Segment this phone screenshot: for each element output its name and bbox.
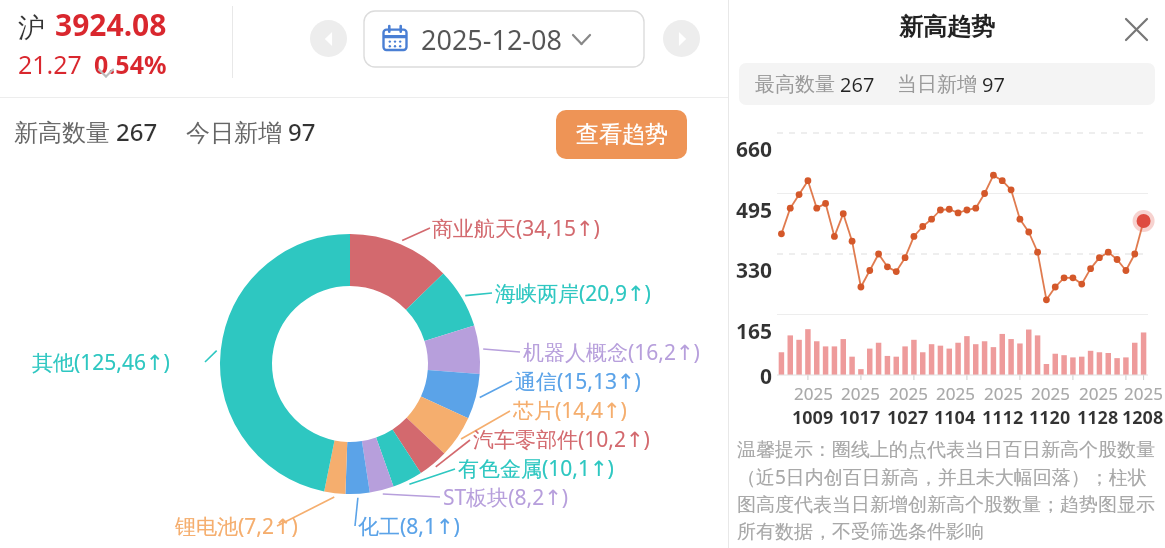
staticText: 芯片(14,4↑) (513, 396, 627, 425)
staticText: 温馨提示：圈线上的点代表当日百日新高个股数量（近5日内创百日新高，并且未大幅回落… (737, 438, 1159, 544)
staticText: 1128 (1077, 405, 1119, 430)
staticText: 0.54% (94, 47, 167, 81)
staticText: 2025-12-08 (421, 21, 562, 58)
staticText: 495 (736, 196, 773, 225)
staticText: 汽车零部件(10,2↑) (473, 425, 650, 454)
staticText: 267 (840, 71, 875, 98)
staticText: 锂电池(7,2↑) (175, 512, 298, 541)
staticText: 商业航天(34,15↑) (432, 214, 600, 243)
staticText: 97 (982, 71, 1005, 98)
staticText: 1208 (1122, 405, 1164, 430)
staticText: 有色金属(10,1↑) (458, 454, 614, 483)
staticText: 1009 (792, 405, 834, 430)
staticText: 1104 (934, 405, 976, 430)
staticText: 21.27 (18, 47, 82, 81)
staticText: 165 (736, 317, 773, 346)
staticText: 0 (760, 362, 773, 391)
staticText: 2025 (984, 382, 1023, 405)
button[interactable]: Previous day (310, 20, 347, 57)
staticText: 2025 (889, 382, 928, 405)
staticText: 3924.08 (55, 4, 167, 45)
staticText: 97 (288, 115, 316, 148)
staticText: 330 (736, 256, 773, 285)
staticText: 通信(15,13↑) (515, 367, 641, 396)
staticText: 最高数量 (755, 72, 835, 97)
staticText: 其他(125,46↑) (32, 348, 170, 377)
staticText: ST板块(8,2↑) (443, 483, 569, 512)
staticText: 1017 (839, 405, 881, 430)
staticText: 2025 (794, 382, 833, 405)
staticText: 机器人概念(16,2↑) (523, 338, 700, 367)
staticText: 1027 (887, 405, 929, 430)
staticText: 新高数量 (14, 118, 110, 148)
button[interactable]: 查看趋势 (556, 110, 687, 159)
staticText: 2025 (1031, 382, 1070, 405)
button[interactable]: 2025-12-08 (364, 11, 644, 67)
button[interactable]: Close (1119, 12, 1153, 46)
staticText: 2025 (936, 382, 975, 405)
button[interactable]: Next day (663, 20, 700, 57)
staticText: 660 (736, 135, 773, 164)
staticText: 海峡两岸(20,9↑) (495, 279, 651, 308)
staticText: 新高趋势 (899, 12, 995, 42)
staticText: 2025 (841, 382, 880, 405)
staticText: 267 (116, 115, 158, 148)
staticText: 今日新增 (186, 118, 282, 148)
staticText: 当日新增 (897, 72, 977, 97)
staticText: 1112 (982, 405, 1024, 430)
staticText: 查看趋势 (576, 120, 668, 149)
staticText: 化工(8,1↑) (358, 512, 460, 541)
staticText: 2025 (1124, 382, 1163, 405)
staticText: 沪 (18, 11, 45, 45)
staticText: 1120 (1029, 405, 1071, 430)
staticText: 2025 (1079, 382, 1118, 405)
